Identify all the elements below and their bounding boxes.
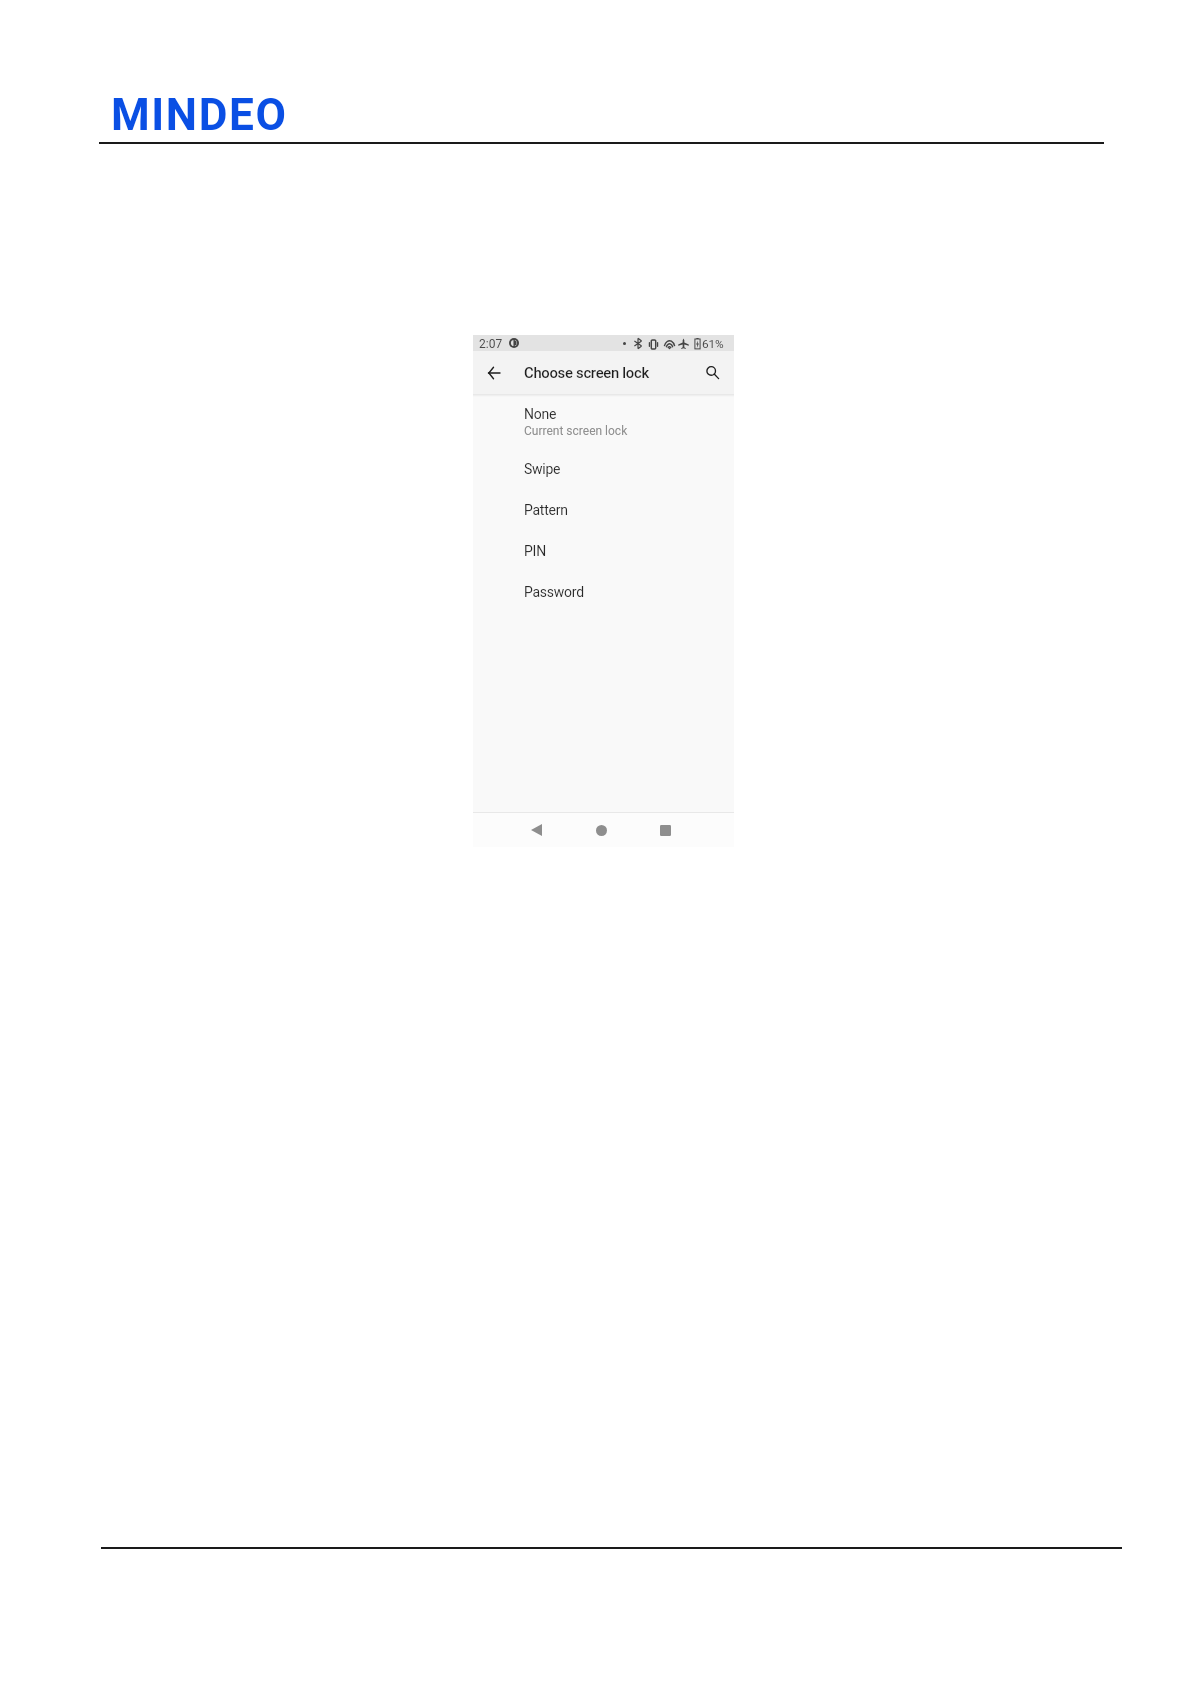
- staticText: MINDEO: [111, 89, 288, 141]
- staticText: Pattern: [524, 502, 568, 518]
- staticText: 2:07: [479, 337, 503, 351]
- staticText: Swipe: [524, 461, 561, 477]
- button[interactable]: Search: [700, 360, 724, 384]
- button[interactable]: Choose screen lock: [524, 351, 649, 392]
- button[interactable]: Pattern: [473, 494, 734, 535]
- button[interactable]: Swipe: [473, 453, 734, 494]
- button[interactable]: None: [473, 402, 734, 443]
- staticText: Password: [524, 584, 584, 600]
- button[interactable]: Back: [523, 817, 549, 843]
- staticText: Choose screen lock: [524, 364, 649, 381]
- staticText: PIN: [524, 543, 546, 559]
- staticText: None: [524, 406, 557, 422]
- button[interactable]: Recents: [652, 817, 678, 843]
- button[interactable]: PIN: [473, 535, 734, 576]
- button[interactable]: Home: [588, 817, 614, 843]
- staticText: Current screen lock: [524, 424, 628, 438]
- staticText: 61%: [702, 337, 724, 351]
- button[interactable]: Password: [473, 576, 734, 617]
- button[interactable]: Back: [482, 361, 506, 385]
